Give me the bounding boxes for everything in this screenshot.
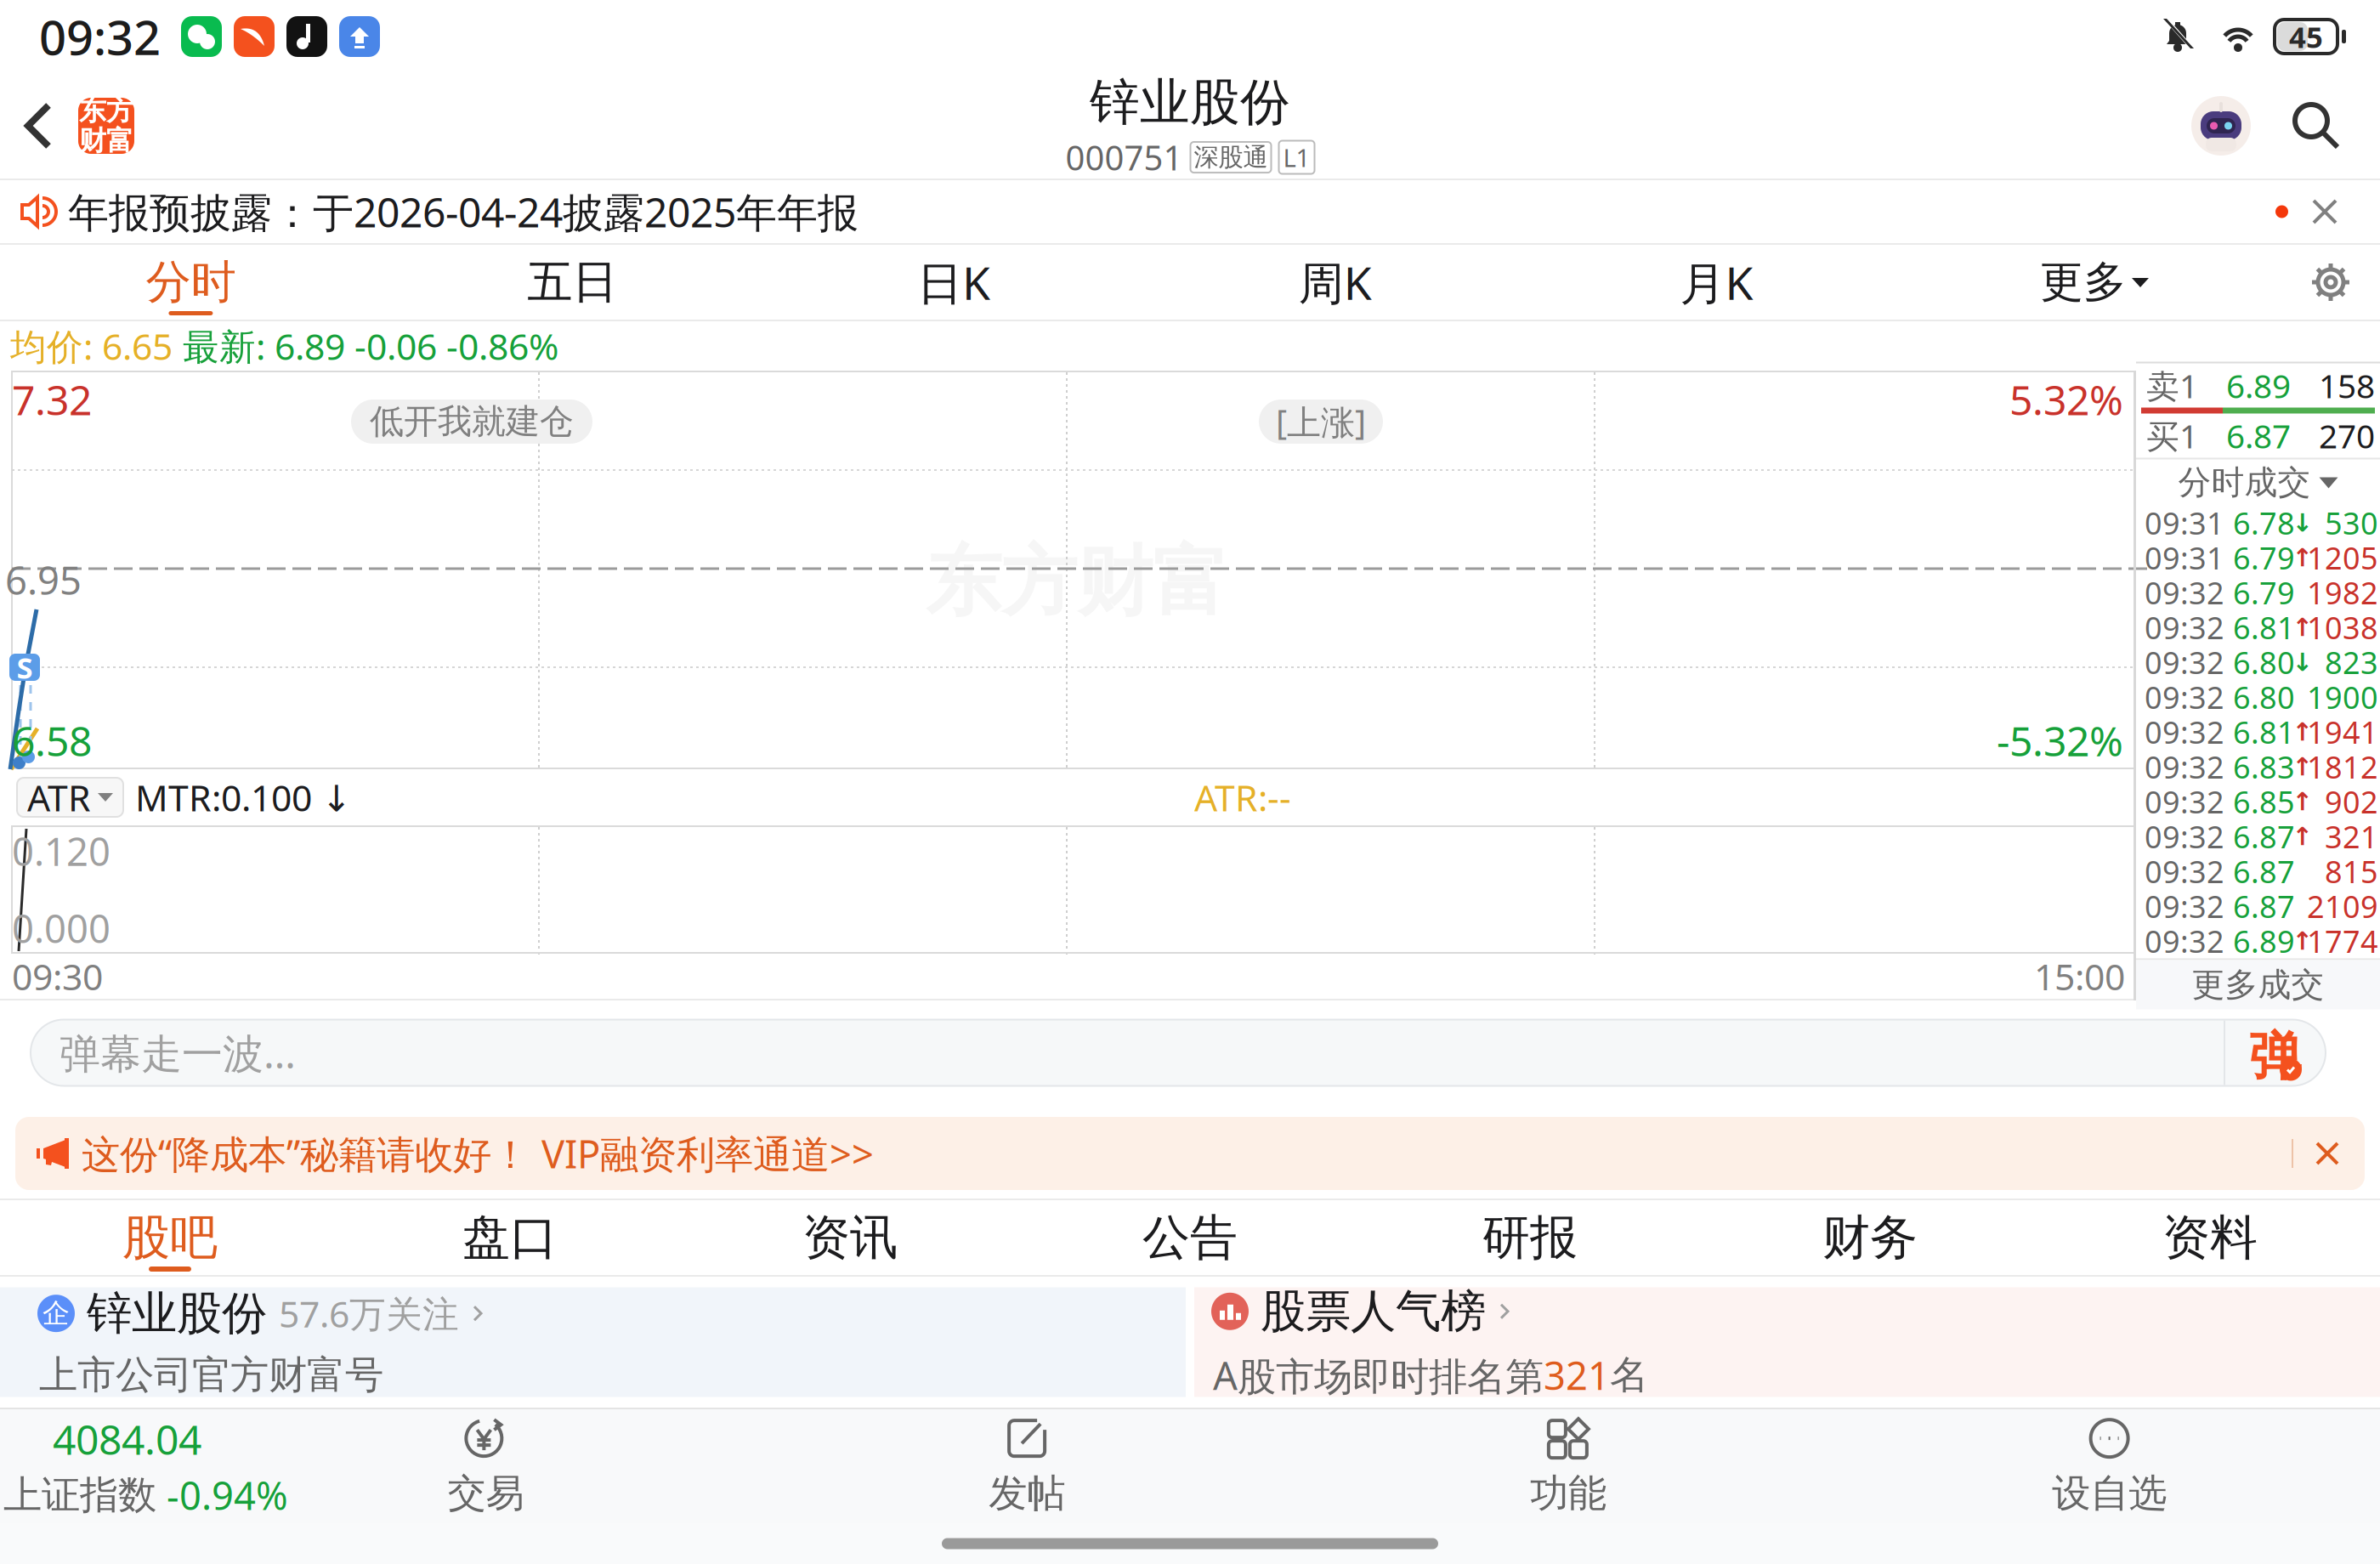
staticText: 月K xyxy=(1680,252,1753,312)
staticText: 6.83 xyxy=(2233,746,2295,787)
button[interactable]: 功能 xyxy=(1298,1409,1839,1523)
staticText: 45 xyxy=(2289,17,2323,56)
staticText: 分时 xyxy=(146,254,236,310)
button[interactable]: 日K xyxy=(763,245,1144,320)
button[interactable]: 分时成交 xyxy=(2136,459,2380,505)
staticText: 09:32 xyxy=(2145,642,2224,682)
staticText: 5.32% xyxy=(2009,372,2123,426)
staticText: 五日 xyxy=(527,254,617,310)
staticText: 6.87 xyxy=(2233,816,2295,857)
button[interactable]: 这份“降成本”秘籍请收好！ VIP融资利率通道>> xyxy=(15,1117,2365,1190)
staticText: 1774 xyxy=(2307,921,2378,961)
staticText: 09:32 xyxy=(2145,746,2224,787)
staticText: 发帖 xyxy=(989,1470,1065,1517)
button[interactable]: Back xyxy=(0,87,78,165)
staticText: 270 xyxy=(2319,414,2375,457)
staticText: 6.85 xyxy=(2233,781,2295,822)
staticText: 09:32 xyxy=(2145,921,2224,961)
staticText: 6.87 xyxy=(2233,851,2295,892)
staticText: 6.89 xyxy=(2226,364,2291,407)
button[interactable]: Send danmu xyxy=(2224,1020,2326,1086)
button[interactable]: Assistant xyxy=(2184,89,2258,162)
button[interactable]: 五日 xyxy=(381,245,763,320)
button[interactable]: Search xyxy=(2278,88,2354,164)
staticText: 交易 xyxy=(447,1470,524,1517)
staticText: 财富 xyxy=(79,124,133,158)
staticText: ↑ xyxy=(2292,543,2313,572)
staticText: 名 xyxy=(1610,1351,1648,1399)
staticText: 研报 xyxy=(1482,1208,1578,1267)
staticText: 卖1 xyxy=(2146,364,2198,407)
staticText: 6.89 xyxy=(2233,921,2295,961)
staticText: ATR xyxy=(27,773,91,821)
button[interactable]: ATR xyxy=(17,778,123,817)
button[interactable]: 股吧 xyxy=(0,1200,340,1275)
button[interactable]: 财务 xyxy=(1700,1200,2040,1275)
staticText: 09:32 xyxy=(2145,712,2224,752)
button[interactable]: 更多成交 xyxy=(2136,960,2380,1009)
staticText: 000751 xyxy=(1065,135,1183,180)
staticText: 09:32 xyxy=(2145,886,2224,926)
staticText: 1038 xyxy=(2307,607,2378,648)
button[interactable]: 弹幕走一波… xyxy=(31,1020,2326,1086)
staticText: 09:30 xyxy=(12,952,103,1000)
button[interactable]: 设自选 xyxy=(1839,1409,2380,1523)
button[interactable]: 分时 xyxy=(0,245,381,320)
staticText: ↑ xyxy=(2292,613,2313,641)
staticText: 1982 xyxy=(2307,572,2378,613)
staticText: ↑ xyxy=(2292,927,2313,955)
staticText: 7.32 xyxy=(12,372,92,426)
staticText: ↑ xyxy=(2292,822,2313,851)
staticText: 功能 xyxy=(1530,1470,1606,1517)
button[interactable]: 公告 xyxy=(1020,1200,1360,1275)
staticText: 815 xyxy=(2325,851,2378,892)
staticText: 上证指数 xyxy=(3,1471,156,1519)
staticText: 6.79 xyxy=(2233,572,2295,613)
button[interactable]: Close xyxy=(2288,180,2361,243)
button[interactable]: 研报 xyxy=(1360,1200,1700,1275)
button[interactable]: 发帖 xyxy=(756,1409,1298,1523)
staticText: 321 xyxy=(1544,1350,1610,1401)
button[interactable]: East Money xyxy=(78,98,134,154)
staticText: 158 xyxy=(2319,364,2375,407)
button[interactable]: 企 xyxy=(0,1287,1186,1397)
staticText: 年报预披露：于2026-04-24披露2025年年报 xyxy=(68,185,858,239)
staticText: 1812 xyxy=(2307,746,2378,787)
staticText: -5.32% xyxy=(1997,713,2123,768)
staticText: 6.80 xyxy=(2233,642,2295,682)
staticText: 资讯 xyxy=(802,1208,898,1267)
staticText: 09:32 xyxy=(2145,572,2224,613)
staticText: 09:31 xyxy=(2145,502,2224,543)
staticText: 这份“降成本”秘籍请收好！ VIP融资利率通道>> xyxy=(82,1128,874,1179)
button[interactable]: 资讯 xyxy=(680,1200,1020,1275)
button[interactable]: 股票人气榜 xyxy=(1194,1287,2380,1397)
button[interactable]: 交易 xyxy=(215,1409,756,1523)
button[interactable]: 月K xyxy=(1526,245,1907,320)
staticText: 股票人气榜 xyxy=(1261,1283,1486,1339)
staticText: 弹 xyxy=(2249,1025,2301,1089)
staticText: 4084.04 xyxy=(53,1412,201,1466)
staticText: 买1 xyxy=(2146,414,2198,457)
staticText: 均价: 6.65 xyxy=(10,322,173,370)
button[interactable]: 资料 xyxy=(2040,1200,2380,1275)
staticText: 6.80 xyxy=(2233,677,2295,717)
staticText: 锌业股份 xyxy=(1090,72,1290,133)
staticText: 低开我就建仓 xyxy=(370,401,574,442)
staticText: 15:00 xyxy=(2034,952,2125,1000)
staticText: 09:32 xyxy=(2145,677,2224,717)
staticText: 57.6万关注 xyxy=(279,1289,459,1337)
staticText: 1941 xyxy=(2307,712,2378,752)
staticText: 321 xyxy=(2325,816,2378,857)
staticText: ATR:-- xyxy=(1194,773,1291,821)
staticText: 设自选 xyxy=(2052,1470,2167,1517)
button[interactable]: 盘口 xyxy=(340,1200,680,1275)
staticText: 902 xyxy=(2325,781,2378,822)
staticText: 企 xyxy=(42,1297,70,1330)
button[interactable]: 周K xyxy=(1144,245,1526,320)
button[interactable]: 4084.04 xyxy=(0,1409,215,1523)
button[interactable]: 更多 xyxy=(1907,245,2281,320)
staticText: 6.81 xyxy=(2233,712,2295,752)
button[interactable]: Settings xyxy=(2281,245,2380,320)
staticText: ↑ xyxy=(2292,787,2313,816)
